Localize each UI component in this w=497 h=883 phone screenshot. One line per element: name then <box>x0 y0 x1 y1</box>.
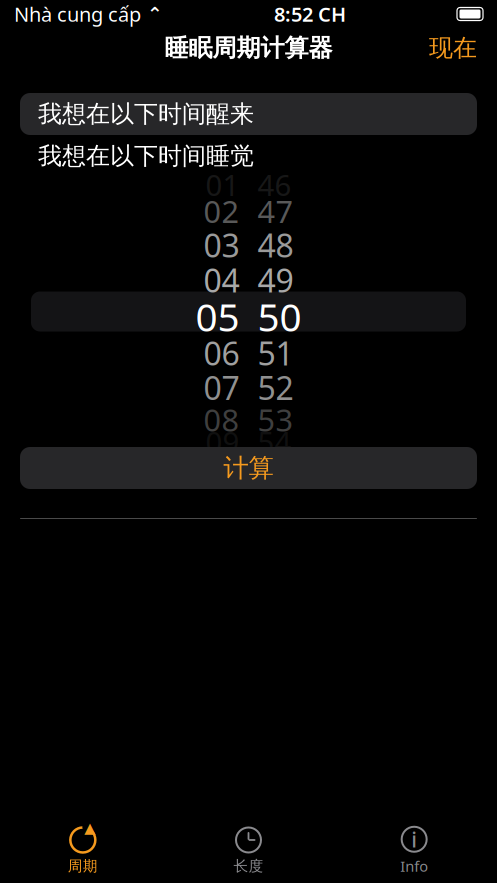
staticText: 50 <box>257 291 301 342</box>
button[interactable]: 长度 <box>166 819 331 879</box>
button[interactable]: i <box>331 818 497 880</box>
staticText: 08 <box>203 399 239 440</box>
button[interactable]: 我想在以下时间醒来 <box>20 93 477 135</box>
staticText: 54 <box>257 422 291 461</box>
button[interactable]: ▲ <box>0 819 166 879</box>
staticText: 05 <box>195 291 239 342</box>
staticText: 06 <box>203 332 239 374</box>
staticText: 46 <box>257 165 291 204</box>
staticText: 09 <box>205 422 239 461</box>
staticText: ⌃ <box>147 3 163 25</box>
staticText: 48 <box>257 224 293 266</box>
staticText: 51 <box>257 332 293 374</box>
staticText: ▲ <box>84 820 95 836</box>
staticText: 03 <box>203 224 239 266</box>
button[interactable]: 现在 <box>421 27 485 69</box>
staticText: 长度 <box>233 857 263 875</box>
button[interactable]: 计算 <box>20 447 477 489</box>
staticText: 睡眠周期计算器 <box>164 33 332 63</box>
staticText: Info <box>400 856 428 876</box>
staticText: 02 <box>203 191 239 231</box>
staticText: 47 <box>257 191 293 231</box>
staticText: 52 <box>257 366 293 409</box>
staticText: 07 <box>203 366 239 409</box>
staticText: 49 <box>257 259 293 301</box>
staticText: 8:52 CH <box>274 1 346 27</box>
staticText: Nhà cung cấp <box>14 1 141 27</box>
staticText: 01 <box>205 165 239 204</box>
staticText: 我想在以下时间醒来 <box>38 99 254 129</box>
button[interactable]: 我想在以下时间睡觉 <box>20 135 477 177</box>
staticText: 周期 <box>68 857 98 875</box>
staticText: 04 <box>203 259 239 301</box>
staticText: 计算 <box>223 452 273 483</box>
staticText: 53 <box>257 399 293 440</box>
staticText: 我想在以下时间睡觉 <box>38 141 254 171</box>
staticText: i <box>411 825 417 853</box>
staticText: 现在 <box>429 33 477 63</box>
